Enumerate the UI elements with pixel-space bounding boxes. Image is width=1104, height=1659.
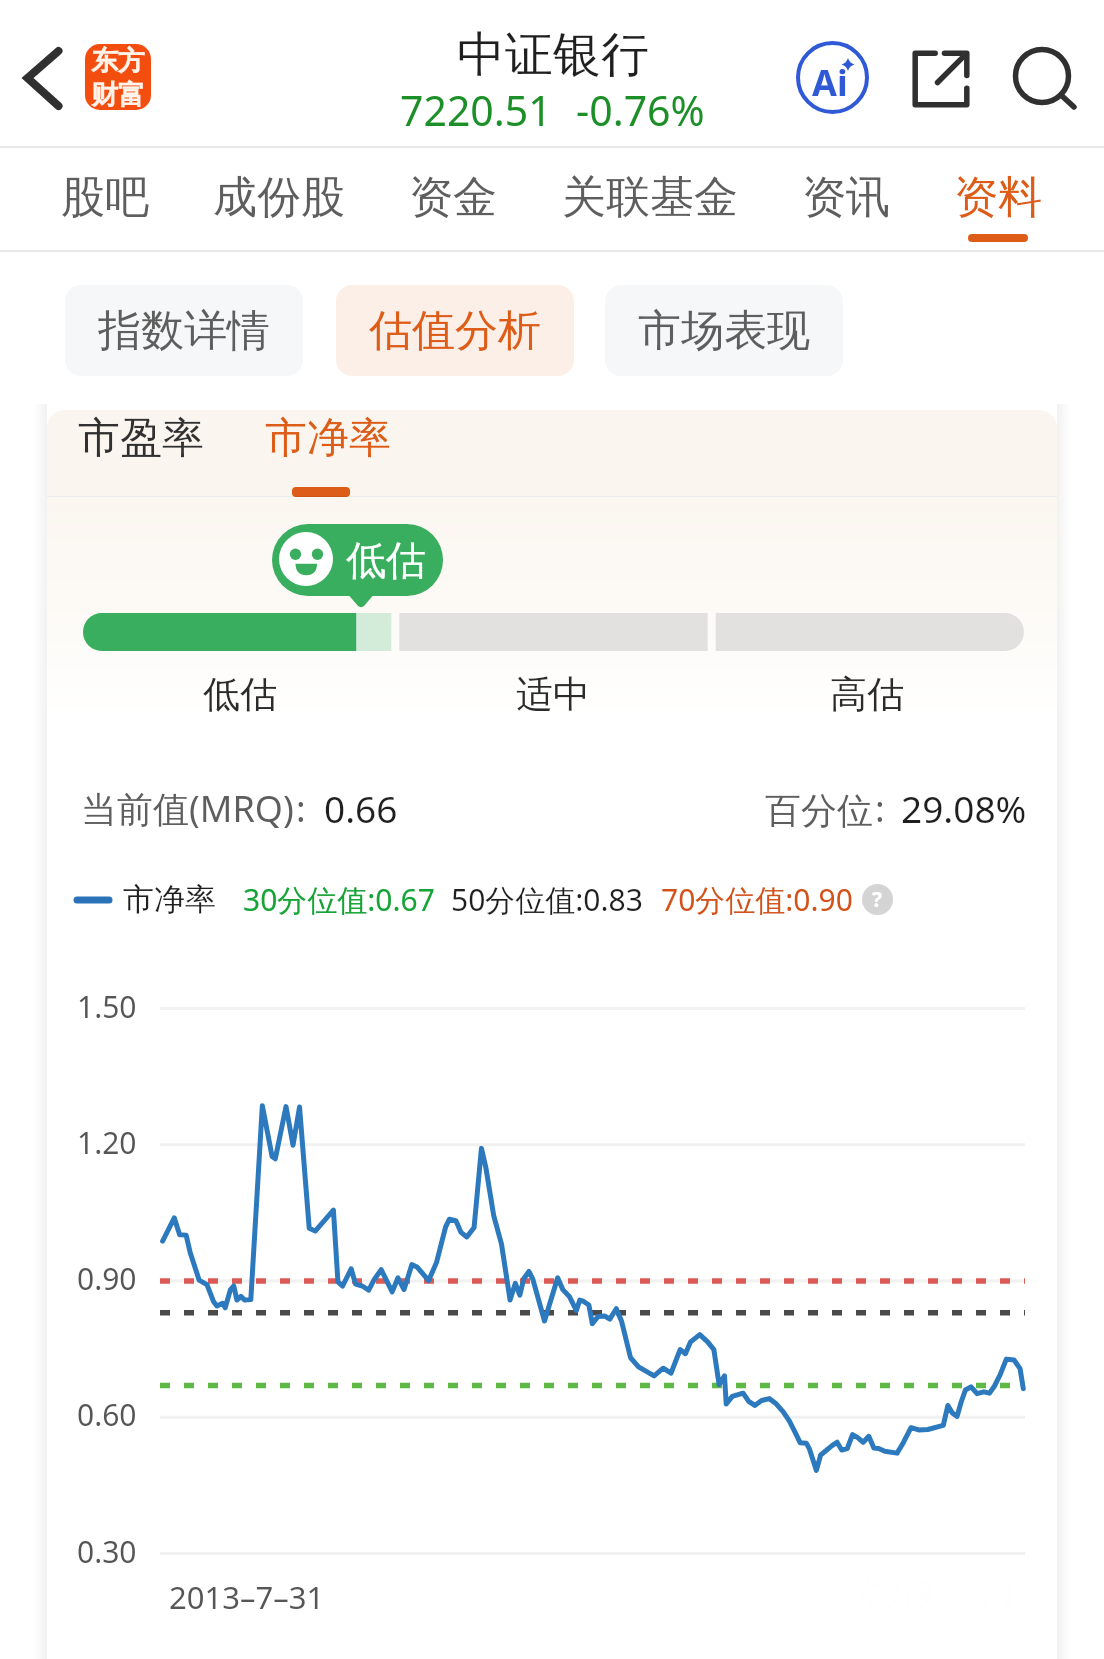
staticText: 0.90 — [77, 1258, 137, 1299]
staticText: : — [296, 784, 306, 833]
button[interactable]: 指数详情 — [65, 285, 303, 376]
staticText: 低估 — [203, 671, 277, 718]
staticText: 市净率 — [265, 412, 391, 465]
staticText: 低估 — [346, 535, 426, 585]
button[interactable]: AI assistant — [793, 38, 872, 117]
button[interactable]: 关联基金 — [550, 152, 750, 248]
staticText: 资金 — [409, 170, 497, 225]
button[interactable]: 市盈率 — [74, 410, 214, 496]
staticText: : — [875, 784, 885, 833]
staticText: 70分位值:0.90 — [661, 879, 853, 920]
button[interactable]: Share — [906, 44, 976, 114]
staticText: 股吧 — [61, 170, 149, 225]
staticText: 7220.51 — [400, 82, 552, 138]
staticText: 东方 — [91, 44, 145, 78]
staticText: Ai — [812, 58, 848, 107]
button[interactable]: 资料 — [942, 152, 1054, 248]
staticText: ? — [872, 885, 883, 914]
staticText: 2013–7–31 — [169, 1576, 325, 1618]
staticText: 成份股 — [213, 170, 345, 225]
staticText: 市盈率 — [78, 412, 204, 465]
button[interactable]: East Money — [85, 44, 151, 110]
staticText: 资料 — [954, 170, 1042, 225]
staticText: 0.66 — [324, 783, 398, 833]
staticText: 关联基金 — [562, 170, 738, 225]
staticText: 高估 — [830, 671, 904, 718]
staticText: 市场表现 — [638, 304, 810, 358]
staticText: 0.60 — [77, 1394, 137, 1435]
button[interactable]: 估值分析 — [336, 285, 574, 376]
staticText: 百分位 — [765, 788, 873, 833]
staticText: 指数详情 — [98, 304, 270, 358]
button[interactable]: 市净率 — [261, 410, 401, 496]
staticText: 适中 — [516, 671, 590, 718]
staticText: 50分位值:0.83 — [451, 879, 643, 920]
staticText: 29.08% — [901, 783, 1027, 833]
button[interactable]: Back — [6, 39, 80, 113]
button[interactable]: 股吧 — [49, 152, 161, 248]
button[interactable]: Help — [862, 884, 893, 915]
staticText: 估值分析 — [369, 304, 541, 358]
staticText: 资讯 — [802, 170, 890, 225]
button[interactable]: Search — [1007, 41, 1077, 111]
staticText: 30分位值:0.67 — [243, 879, 435, 920]
staticText: -0.76% — [576, 82, 705, 138]
staticText: 财富 — [91, 78, 145, 110]
button[interactable]: 市场表现 — [605, 285, 843, 376]
staticText: 中证银行 — [457, 25, 649, 85]
staticText: 当前值(MRQ) — [81, 784, 294, 833]
staticText: 1.20 — [77, 1122, 137, 1163]
staticText: 1.50 — [77, 986, 137, 1027]
button[interactable]: 资金 — [397, 152, 509, 248]
staticText: 0.30 — [77, 1531, 137, 1572]
button[interactable]: 成份股 — [201, 152, 357, 248]
staticText: 市净率 — [123, 880, 216, 919]
button[interactable]: 资讯 — [790, 152, 902, 248]
